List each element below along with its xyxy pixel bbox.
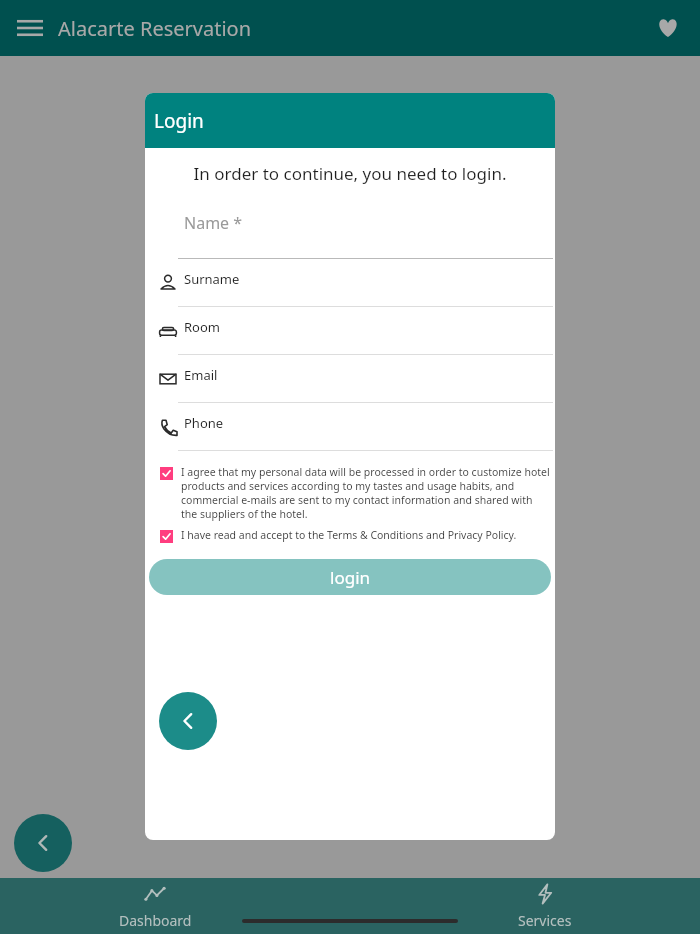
button[interactable]: Back bbox=[159, 692, 217, 750]
button[interactable]: Name * bbox=[145, 211, 555, 259]
staticText: Dashboard bbox=[119, 911, 192, 930]
button[interactable]: I have read and accept to the Terms & Co… bbox=[160, 528, 551, 542]
staticText: login bbox=[330, 566, 371, 589]
staticText: Surname bbox=[184, 270, 240, 288]
button[interactable]: I agree that my personal data will be pr… bbox=[160, 465, 551, 521]
staticText: Services bbox=[518, 911, 572, 930]
button[interactable]: Back bbox=[14, 814, 72, 872]
button[interactable]: Services bbox=[490, 878, 600, 934]
button[interactable]: Email bbox=[145, 355, 555, 403]
staticText: Phone bbox=[184, 414, 224, 432]
button[interactable]: Surname bbox=[145, 259, 555, 307]
staticText: I have read and accept to the Terms & Co… bbox=[181, 528, 517, 542]
button[interactable]: Phone bbox=[145, 403, 555, 451]
button[interactable]: Dashboard bbox=[100, 878, 210, 934]
staticText: Alacarte Reservation bbox=[58, 15, 251, 42]
staticText: Room bbox=[184, 318, 220, 336]
staticText: Login bbox=[154, 108, 204, 134]
staticText: In order to continue, you need to login. bbox=[145, 162, 555, 185]
button[interactable]: login bbox=[149, 559, 551, 595]
button[interactable]: Favorites bbox=[646, 6, 690, 50]
staticText: Name * bbox=[184, 212, 243, 234]
staticText: Email bbox=[184, 366, 218, 384]
button[interactable]: Open navigation menu bbox=[8, 6, 52, 50]
staticText: I agree that my personal data will be pr… bbox=[181, 465, 551, 521]
button[interactable]: Room bbox=[145, 307, 555, 355]
